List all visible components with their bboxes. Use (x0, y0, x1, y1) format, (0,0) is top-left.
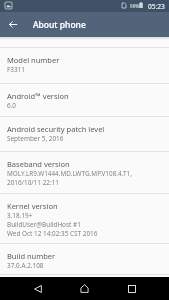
staticText: Android security patch level (7, 124, 105, 134)
button[interactable]: Kernel version (0, 194, 169, 243)
staticText: 3.18.19+ (7, 211, 33, 220)
button[interactable]: Home (67, 277, 102, 300)
staticText: Android™ version (7, 91, 69, 101)
button[interactable]: Navigate up (0, 12, 25, 37)
staticText: Build number (7, 251, 56, 261)
button[interactable]: Baseband version (0, 152, 169, 193)
staticText: 2016/10/11 22:11 (7, 178, 59, 187)
button[interactable]: Android™ version (0, 84, 169, 116)
staticText: F3311 (7, 65, 25, 74)
staticText: Model number (7, 55, 60, 65)
staticText: September 5, 2016 (7, 134, 64, 143)
staticText: 05:23 (148, 2, 165, 11)
staticText: About phone (33, 19, 86, 31)
staticText: Baseband version (7, 159, 70, 169)
button[interactable]: Recent apps (114, 277, 149, 300)
staticText: MOLY.LR9.W1444.MD.LWTG.MP.V108.4.T1, (7, 169, 132, 178)
staticText: 37.0.A.2.108 (7, 261, 44, 270)
staticText: 6.0 (7, 101, 17, 110)
button[interactable]: Back (20, 277, 55, 300)
button[interactable]: Build number (0, 244, 169, 274)
staticText: 96% (130, 3, 140, 9)
button[interactable]: Model number (0, 48, 169, 83)
staticText: BuildUser@BuildHost #1 (7, 220, 81, 229)
button[interactable]: Android security patch level (0, 117, 169, 151)
staticText: Kernel version (7, 201, 58, 211)
staticText: Wed Oct 12 14:02:35 CST 2016 (7, 229, 98, 238)
